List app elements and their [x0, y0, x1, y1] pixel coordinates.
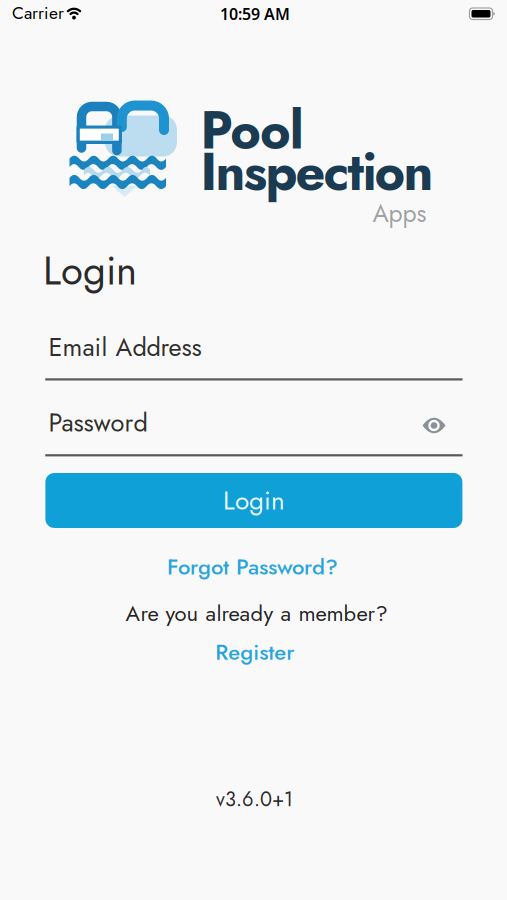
button[interactable]: Register: [215, 636, 294, 668]
staticText: 10:59 AM: [220, 3, 290, 24]
textField[interactable]: Password: [49, 404, 460, 441]
button[interactable]: Show password: [422, 412, 446, 438]
staticText: Are you already a member?: [125, 597, 387, 629]
staticText: Email Address: [49, 329, 202, 366]
button[interactable]: Login: [45, 473, 462, 528]
staticText: Login: [223, 482, 285, 519]
textField[interactable]: Email Address: [49, 329, 460, 366]
staticText: Password: [49, 404, 148, 441]
staticText: Inspection: [200, 134, 433, 209]
staticText: Carrier: [12, 0, 64, 25]
staticText: v3.6.0+1: [216, 785, 293, 814]
staticText: Apps: [372, 196, 426, 231]
staticText: Pool: [200, 93, 304, 168]
staticText: Forgot Password?: [167, 551, 338, 583]
staticText: Login: [43, 242, 137, 299]
button[interactable]: Forgot Password?: [167, 551, 338, 583]
staticText: Register: [215, 636, 294, 668]
